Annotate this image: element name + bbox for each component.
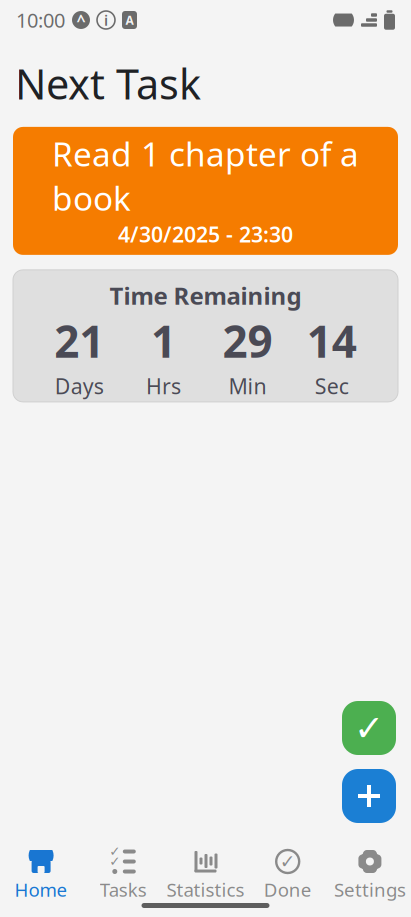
staticText: 14 [307,311,357,370]
staticText: 29 [223,311,273,370]
staticText: Sec [315,372,349,400]
staticText: Hrs [146,372,181,400]
staticText: ✓ [280,851,296,872]
button[interactable]: Home [0,849,82,902]
staticText: Home [15,877,68,902]
staticText: 1 [151,311,176,370]
staticText: Days [55,372,104,400]
staticText: 4/30/2025 - 23:30 [118,220,293,248]
staticText: Tasks [100,877,147,902]
button[interactable]: ✓ [82,849,164,902]
button[interactable]: Settings [329,849,411,902]
staticText: ✓ [354,708,384,748]
staticText: 10:00 [16,7,65,33]
staticText: Statistics [166,877,244,902]
button[interactable]: ✓ [247,849,329,902]
button[interactable]: Read 1 chapter of a book [13,127,398,255]
staticText: ✓ [109,844,120,859]
staticText: Settings [334,877,406,902]
staticText: i [104,10,108,30]
button[interactable]: Add task [342,769,396,823]
staticText: ✓ [109,854,120,869]
staticText: ^ [76,9,85,31]
staticText: Next Task [15,56,201,111]
staticText: Min [229,372,267,400]
staticText: A [125,12,133,28]
staticText: Time Remaining [109,280,301,311]
staticText: Read 1 chapter of a book [52,131,359,220]
button[interactable]: Mark task done [342,701,396,755]
staticText: Done [264,877,312,902]
button[interactable]: Statistics [164,849,247,902]
staticText: 21 [54,311,104,370]
